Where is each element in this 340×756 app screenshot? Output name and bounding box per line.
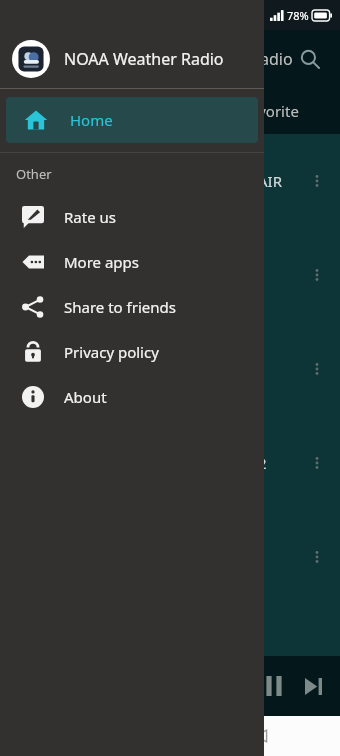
button[interactable]: Share to friends <box>0 284 264 329</box>
staticText: NOAA Weather Radio <box>64 48 224 70</box>
button[interactable]: Home <box>6 97 258 143</box>
button[interactable]: 2 <box>0 416 340 510</box>
staticText: Home <box>70 110 113 130</box>
button[interactable]: Back <box>244 719 278 753</box>
staticText: Rate us <box>64 207 116 227</box>
staticText: 78% <box>287 8 309 23</box>
staticText: About <box>64 387 107 407</box>
button[interactable]: AIR <box>0 134 340 228</box>
button[interactable]: More options <box>0 228 340 322</box>
button[interactable]: More options <box>0 510 340 604</box>
button[interactable]: About <box>0 374 264 419</box>
staticText: Favorite <box>242 101 299 121</box>
button[interactable]: Next <box>294 667 332 705</box>
staticText: Other <box>16 165 52 183</box>
button[interactable]: More options <box>302 166 332 196</box>
button[interactable]: Search <box>290 39 330 79</box>
staticText: AIR <box>258 171 283 191</box>
button[interactable]: More options <box>302 354 332 384</box>
button[interactable]: More options <box>302 448 332 478</box>
button[interactable]: NOAA Weather Radio <box>0 30 264 88</box>
staticText: Privacy policy <box>64 342 159 362</box>
button[interactable]: Pause <box>254 666 294 706</box>
button[interactable]: More options <box>0 322 340 416</box>
button[interactable]: Privacy policy <box>0 329 264 374</box>
staticText: Share to friends <box>64 297 176 317</box>
button[interactable]: More options <box>302 542 332 572</box>
staticText: Radio <box>250 48 293 70</box>
staticText: More apps <box>64 252 139 272</box>
button[interactable]: More options <box>302 260 332 290</box>
button[interactable]: More apps <box>0 239 264 284</box>
button[interactable]: Rate us <box>0 194 264 239</box>
staticText: 2 <box>258 453 267 473</box>
